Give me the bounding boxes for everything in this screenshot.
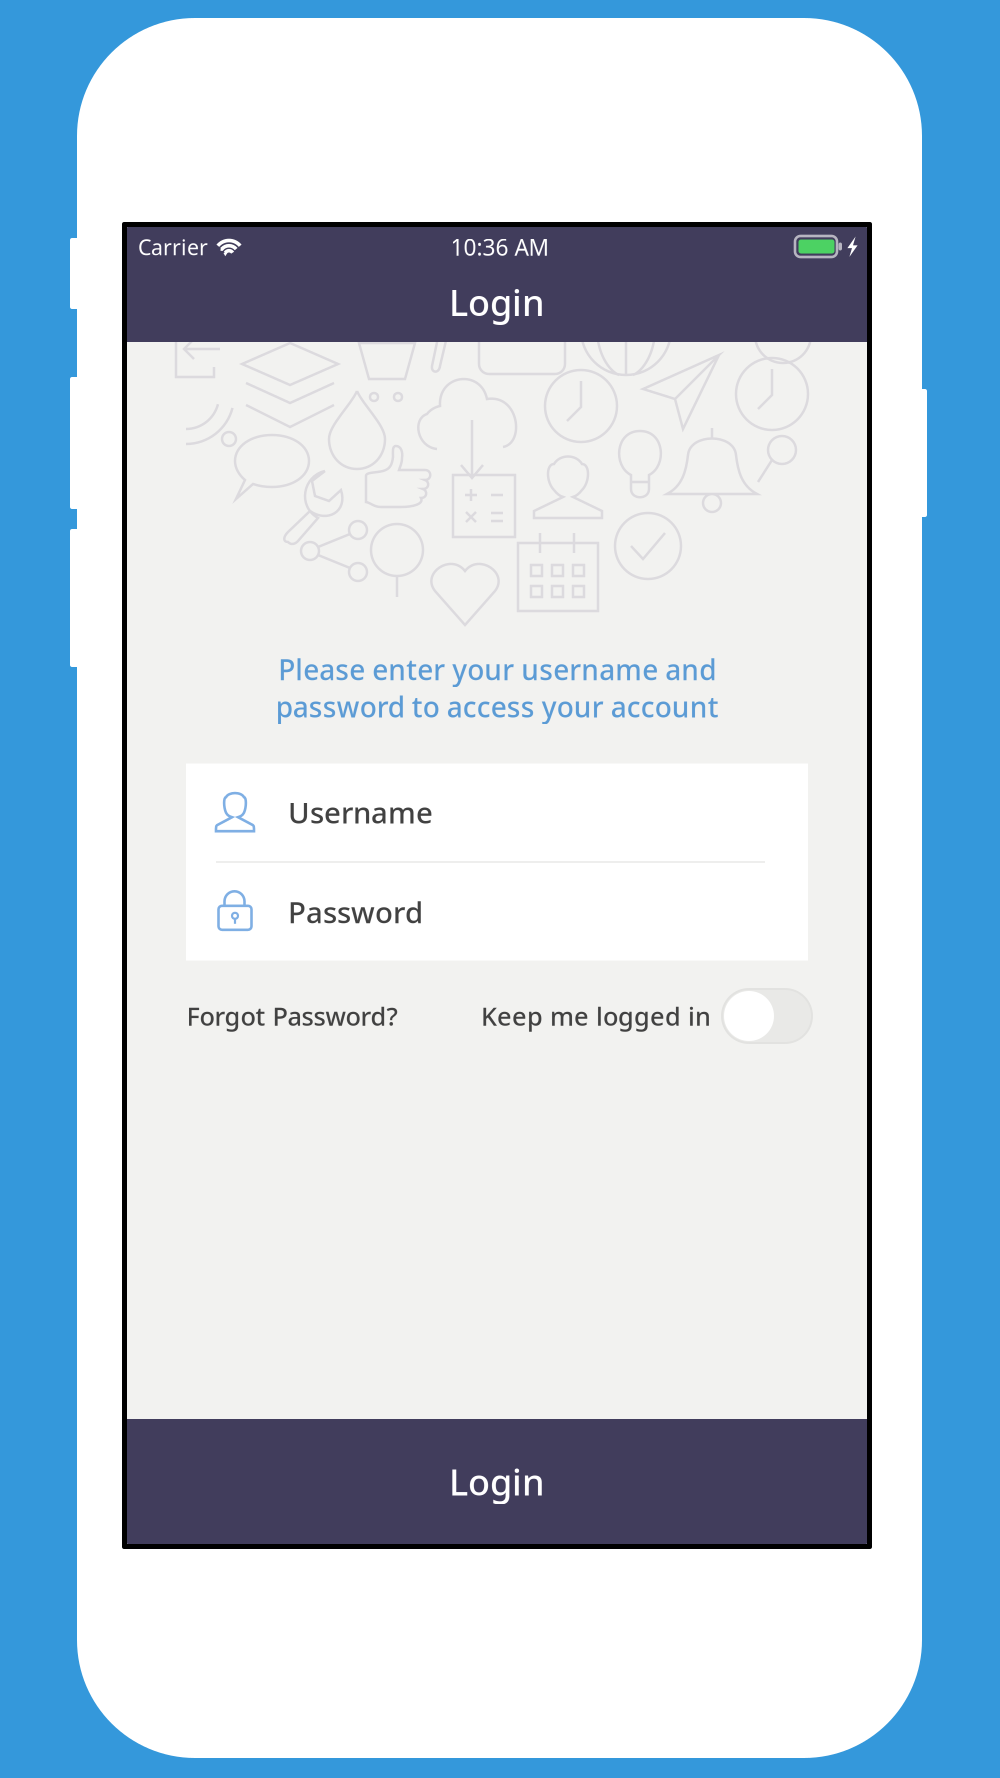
staticText: Username — [288, 793, 433, 832]
staticText: Please enter your username and password … — [275, 651, 718, 725]
button[interactable]: Password — [186, 863, 808, 961]
staticText: Forgot Password? — [186, 999, 397, 1033]
staticText: Login — [449, 1458, 545, 1505]
button[interactable]: Forgot Password? — [184, 991, 399, 1041]
staticText: Login — [449, 278, 545, 326]
staticText: Password — [288, 892, 423, 931]
staticText: Keep me logged in — [481, 999, 711, 1033]
staticText: Carrier — [138, 233, 208, 261]
staticText: 10:36 AM — [450, 232, 549, 262]
button[interactable]: Username — [186, 763, 808, 861]
button[interactable]: Keep me logged in — [722, 989, 812, 1043]
button[interactable]: Login — [127, 1419, 867, 1544]
